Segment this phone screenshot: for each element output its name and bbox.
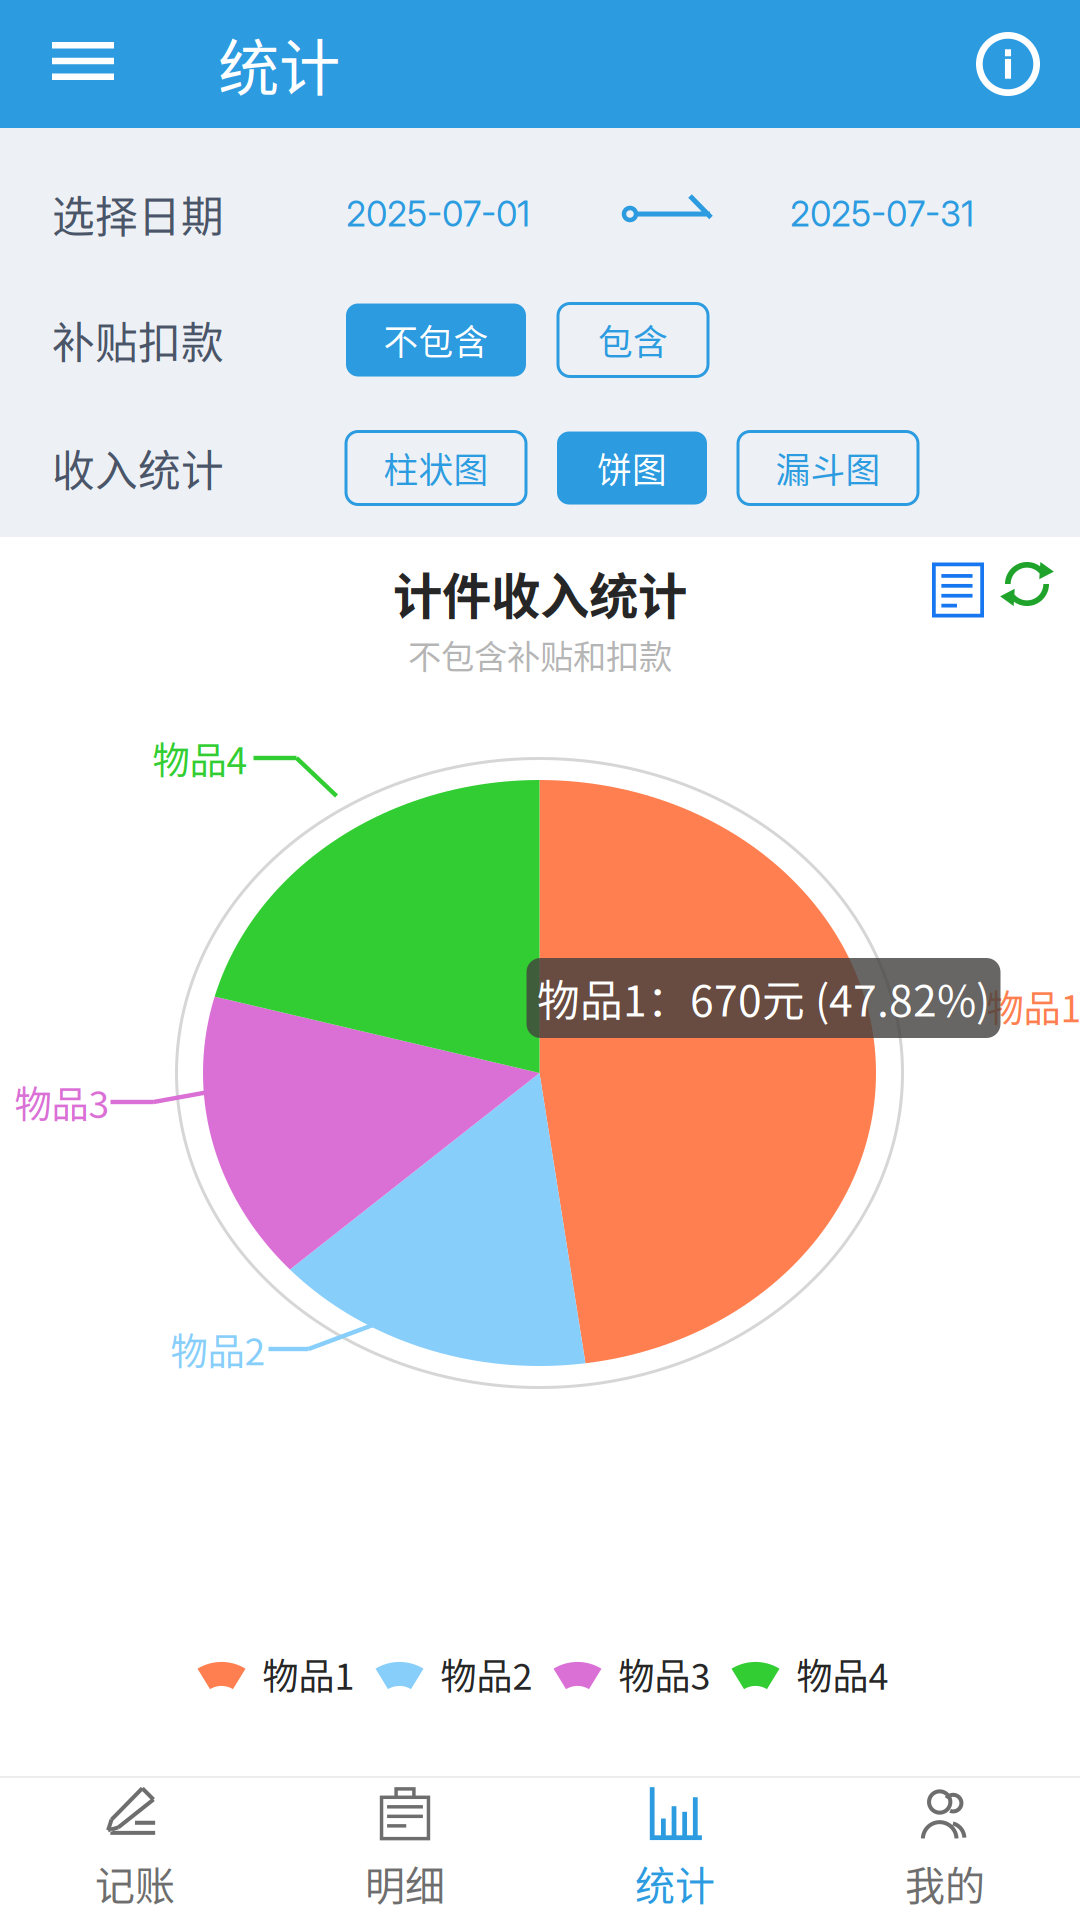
button[interactable]: 明细 xyxy=(270,1777,540,1920)
staticText: 收入统计 xyxy=(52,437,224,499)
staticText: 记账 xyxy=(95,1854,175,1912)
button[interactable]: 包含 xyxy=(558,303,708,376)
button[interactable]: 记账 xyxy=(0,1777,270,1920)
staticText: 物品2 xyxy=(170,1322,265,1376)
staticText: 统计 xyxy=(218,20,340,108)
button[interactable]: Info xyxy=(946,0,1080,128)
button[interactable]: 我的 xyxy=(810,1777,1080,1920)
staticText: 物品3 xyxy=(14,1075,109,1129)
staticText: 统计 xyxy=(635,1854,715,1912)
staticText: 选择日期 xyxy=(52,183,224,245)
button[interactable]: 漏斗图 xyxy=(738,431,918,504)
button[interactable]: 2025-07-01 xyxy=(346,193,542,235)
staticText: 补贴扣款 xyxy=(52,309,224,371)
staticText: 2025-07-01 xyxy=(346,193,530,235)
staticText: 物品1：670元 (47.82%) xyxy=(537,967,990,1029)
button[interactable]: Refresh xyxy=(1000,557,1054,703)
staticText: 物品4 xyxy=(152,731,247,785)
staticText: 物品1 xyxy=(262,1648,354,1700)
staticText: 柱状图 xyxy=(383,443,488,493)
staticText: 物品4 xyxy=(796,1648,888,1700)
staticText: 包含 xyxy=(598,315,668,365)
staticText: 2025-07-31 xyxy=(790,193,974,235)
staticText: 明细 xyxy=(365,1854,445,1912)
button[interactable]: 2025-07-31 xyxy=(790,193,986,235)
button[interactable]: Detail list xyxy=(932,562,984,697)
staticText: 物品2 xyxy=(440,1648,532,1700)
staticText: 计件收入统计 xyxy=(393,557,687,628)
button[interactable]: Menu xyxy=(0,0,166,128)
staticText: 饼图 xyxy=(597,443,667,493)
staticText: 我的 xyxy=(905,1854,985,1912)
staticText: 物品3 xyxy=(618,1648,710,1700)
staticText: 不包含补贴和扣款 xyxy=(408,630,672,679)
button[interactable]: 不包含 xyxy=(346,303,526,376)
button[interactable]: 统计 xyxy=(540,1777,810,1920)
staticText: 不包含 xyxy=(383,315,488,365)
staticText: 物品1 xyxy=(986,979,1080,1033)
button[interactable]: 饼图 xyxy=(557,431,707,504)
button[interactable]: 柱状图 xyxy=(346,431,526,504)
staticText: 漏斗图 xyxy=(775,443,880,493)
